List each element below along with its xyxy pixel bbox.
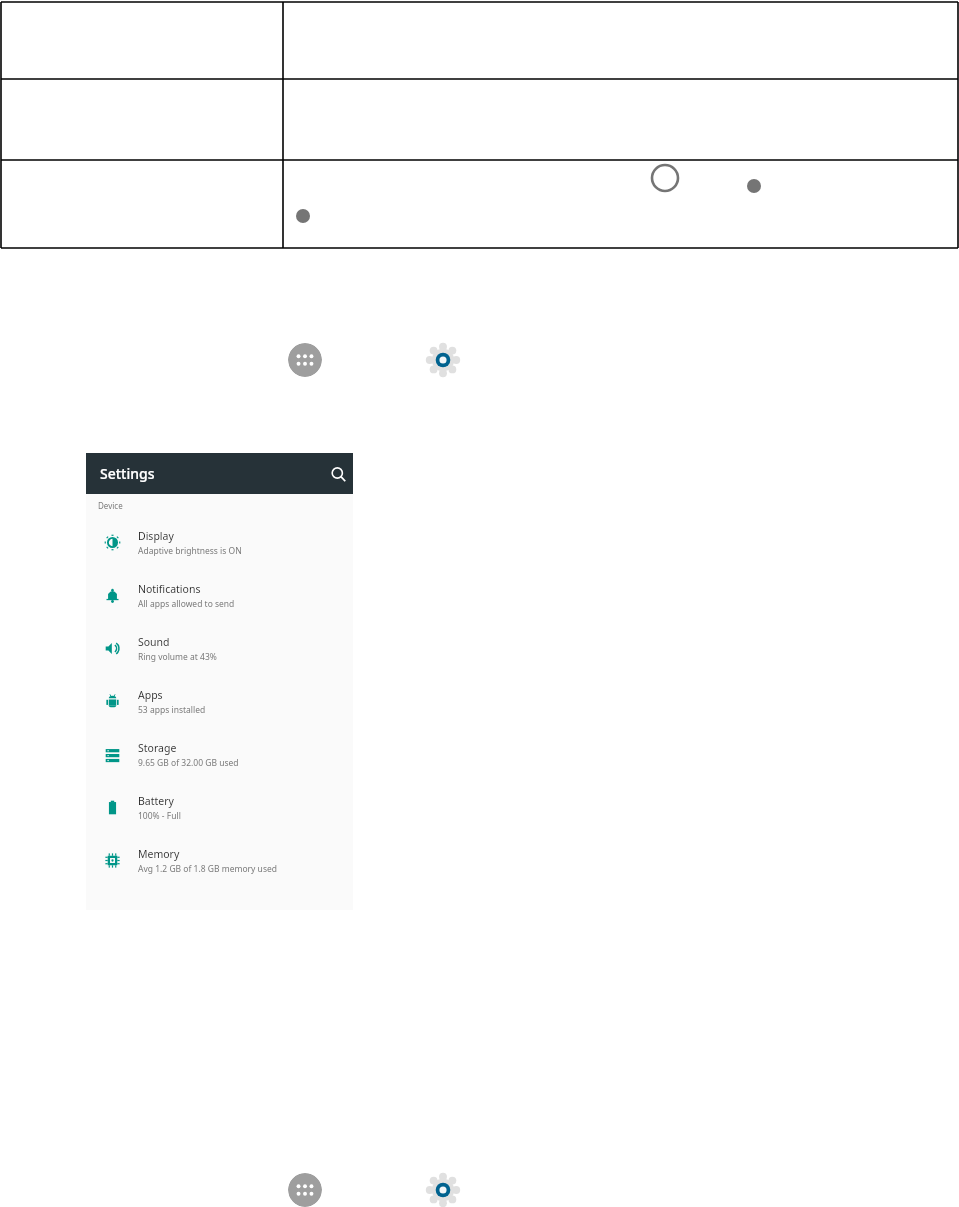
staticText: 53 apps installed	[138, 704, 206, 716]
button[interactable]: Apps	[86, 675, 353, 728]
staticText: Device	[98, 500, 123, 511]
button[interactable]: Sound	[86, 622, 353, 675]
staticText: 100% - Full	[138, 810, 181, 822]
button[interactable]: Search	[323, 459, 353, 489]
staticText: Ring volume at 43%	[138, 651, 217, 663]
staticText: Settings	[100, 464, 155, 483]
button[interactable]: Notifications	[86, 569, 353, 622]
staticText: Memory	[138, 847, 180, 861]
button[interactable]: Storage	[86, 728, 353, 781]
staticText: Display	[138, 529, 174, 543]
button[interactable]: All apps	[288, 343, 322, 377]
staticText: Storage	[138, 741, 177, 755]
staticText: Notifications	[138, 582, 201, 596]
staticText: Avg 1.2 GB of 1.8 GB memory used	[138, 863, 277, 875]
staticText: 9.65 GB of 32.00 GB used	[138, 757, 239, 769]
staticText: Adaptive brightness is ON	[138, 545, 242, 557]
staticText: Battery	[138, 794, 174, 808]
staticText: Sound	[138, 635, 170, 649]
staticText: Apps	[138, 688, 163, 702]
button[interactable]: Battery	[86, 781, 353, 834]
button[interactable]: Settings	[426, 1173, 460, 1207]
button[interactable]: Memory	[86, 834, 353, 887]
button[interactable]: Settings	[86, 453, 353, 494]
button[interactable]: Display	[86, 516, 353, 569]
button[interactable]: All apps	[288, 1173, 322, 1207]
staticText: All apps allowed to send	[138, 598, 235, 610]
button[interactable]: Settings	[426, 343, 460, 377]
